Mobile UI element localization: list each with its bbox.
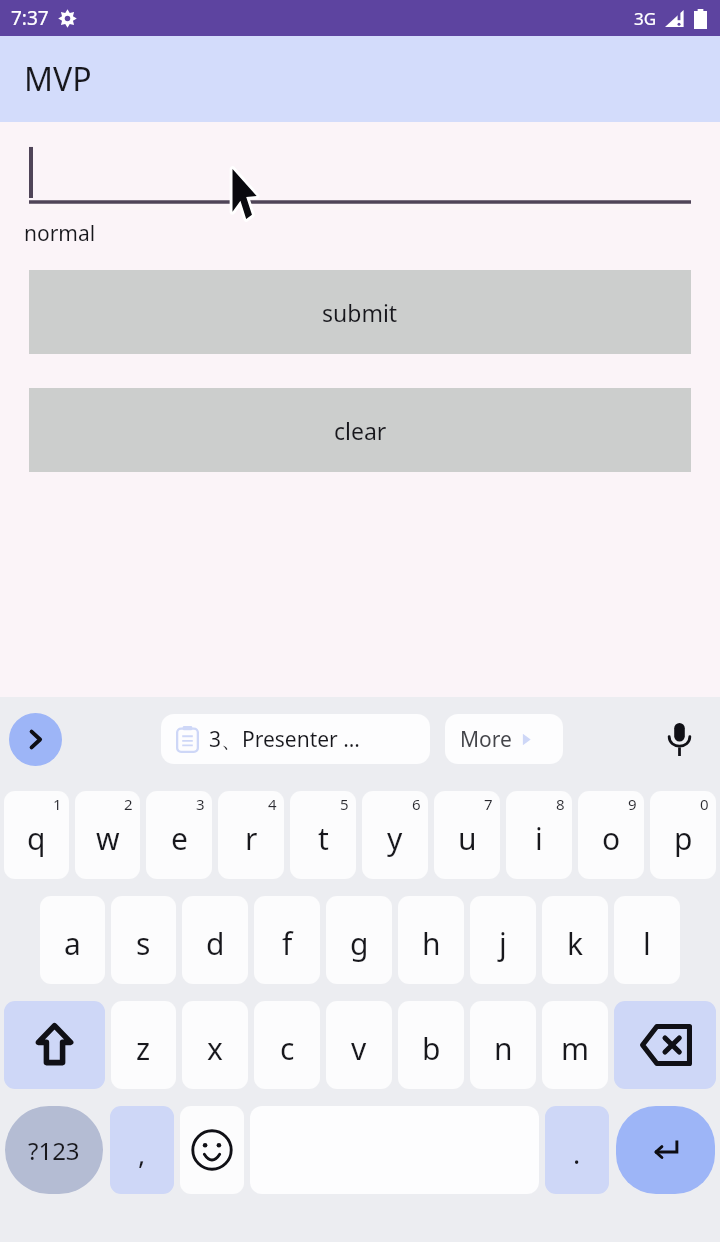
staticText: 3 (196, 794, 205, 814)
staticText: MVP (24, 57, 92, 101)
staticText: 5 (340, 794, 349, 814)
staticText: 8 (556, 794, 565, 814)
button[interactable]: q (4, 791, 69, 879)
staticText: 3G (634, 7, 657, 30)
button[interactable]: c (254, 1001, 320, 1089)
button[interactable]: Text input (29, 142, 691, 204)
staticText: . (573, 1135, 581, 1172)
button[interactable]: t (290, 791, 356, 879)
staticText: 0 (700, 794, 709, 814)
button[interactable]: Backspace (614, 1001, 716, 1089)
staticText: x (207, 1028, 223, 1069)
staticText: j (499, 923, 507, 964)
staticText: z (136, 1028, 151, 1069)
button[interactable]: o (578, 791, 644, 879)
button[interactable]: More (460, 714, 563, 764)
button[interactable]: k (542, 896, 608, 984)
staticText: m (561, 1028, 590, 1069)
button[interactable]: h (398, 896, 464, 984)
button[interactable]: d (182, 896, 248, 984)
button[interactable]: e (146, 791, 212, 879)
staticText: 4 (268, 794, 277, 814)
button[interactable]: i (506, 791, 572, 879)
staticText: s (136, 923, 151, 964)
staticText: 2 (124, 794, 133, 814)
staticText: k (567, 923, 584, 964)
staticText: q (27, 818, 46, 859)
button[interactable]: ?123 (5, 1106, 103, 1194)
staticText: submit (322, 297, 398, 328)
button[interactable]: j (470, 896, 536, 984)
staticText: normal (24, 219, 96, 248)
staticText: i (535, 818, 543, 859)
button[interactable]: v (326, 1001, 392, 1089)
button[interactable]: Voice input (654, 714, 704, 764)
staticText: f (282, 923, 293, 964)
staticText: w (96, 818, 120, 859)
staticText: ?123 (28, 1134, 80, 1167)
button[interactable]: z (111, 1001, 176, 1089)
button[interactable]: submit (29, 270, 691, 354)
staticText: v (351, 1028, 367, 1069)
staticText: 3、Presenter … (209, 725, 360, 754)
button[interactable]: u (434, 791, 500, 879)
staticText: o (602, 818, 621, 859)
staticText: t (318, 818, 329, 859)
staticText: a (64, 923, 81, 964)
staticText: g (350, 923, 369, 964)
staticText: y (387, 818, 403, 859)
button[interactable]: s (111, 896, 176, 984)
button[interactable]: r (218, 791, 284, 879)
staticText: c (280, 1028, 295, 1069)
button[interactable]: g (326, 896, 392, 984)
button[interactable]: 3、Presenter … (176, 714, 415, 764)
staticText: n (494, 1028, 513, 1069)
button[interactable]: a (40, 896, 105, 984)
button[interactable]: . (545, 1106, 609, 1194)
button[interactable]: Emoji (180, 1106, 244, 1194)
staticText: d (206, 923, 225, 964)
staticText: e (171, 818, 188, 859)
button[interactable]: y (362, 791, 428, 879)
button[interactable]: f (254, 896, 320, 984)
button[interactable]: w (75, 791, 140, 879)
staticText: , (138, 1135, 146, 1172)
button[interactable]: x (182, 1001, 248, 1089)
staticText: b (422, 1028, 441, 1069)
staticText: 7:37 (11, 5, 49, 31)
staticText: p (674, 818, 693, 859)
staticText: u (458, 818, 477, 859)
staticText: 1 (53, 794, 62, 814)
button[interactable]: , (110, 1106, 174, 1194)
staticText: clear (334, 415, 387, 446)
button[interactable]: m (542, 1001, 608, 1089)
button[interactable]: Expand suggestions (9, 713, 62, 766)
button[interactable]: b (398, 1001, 464, 1089)
staticText: h (422, 923, 441, 964)
staticText: l (643, 923, 651, 964)
button[interactable]: l (614, 896, 680, 984)
button[interactable]: Enter (616, 1106, 715, 1194)
staticText: 9 (628, 794, 637, 814)
button[interactable]: p (650, 791, 716, 879)
staticText: More (460, 725, 512, 754)
staticText: 7 (484, 794, 493, 814)
button[interactable]: n (470, 1001, 536, 1089)
button[interactable]: Shift (4, 1001, 105, 1089)
staticText: r (245, 818, 258, 859)
button[interactable]: clear (29, 388, 691, 472)
staticText: 6 (412, 794, 421, 814)
